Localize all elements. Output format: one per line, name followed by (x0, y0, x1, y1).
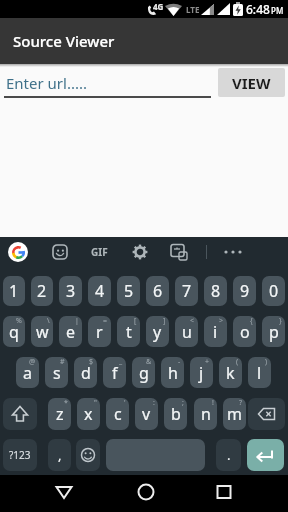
staticText: 9 (240, 280, 250, 302)
button[interactable] (50, 478, 78, 506)
staticText: = (103, 316, 108, 326)
button[interactable]: 2 (31, 276, 53, 306)
button[interactable]: j (190, 357, 213, 388)
button[interactable]: h (161, 357, 184, 388)
staticText: 4G (153, 1, 164, 12)
button[interactable] (131, 243, 149, 261)
staticText: LTE (186, 4, 200, 15)
staticText: : (153, 398, 155, 408)
staticText: s (53, 362, 61, 384)
staticText: 7 (182, 280, 192, 302)
button[interactable] (132, 478, 160, 506)
button[interactable]: 9 (233, 276, 256, 306)
button[interactable] (52, 244, 68, 260)
staticText: _ (119, 357, 123, 367)
button[interactable]: i (204, 316, 227, 347)
staticText: x (84, 403, 93, 425)
staticText: ' (124, 398, 126, 408)
button[interactable]: GIF (88, 243, 110, 261)
button[interactable] (220, 243, 246, 261)
staticText: u (182, 321, 192, 343)
staticText: 3 (66, 280, 76, 302)
button[interactable]: e (59, 316, 82, 347)
button[interactable]: m (223, 398, 246, 430)
staticText: e (66, 321, 76, 343)
button[interactable]: v (135, 398, 158, 430)
button[interactable] (210, 478, 238, 506)
staticText: 1 (9, 280, 19, 302)
button[interactable]: u (175, 316, 198, 347)
button[interactable]: z (48, 398, 71, 430)
staticText: % (16, 316, 22, 326)
staticText: , (58, 446, 62, 464)
button[interactable] (170, 243, 188, 261)
button[interactable] (248, 398, 285, 430)
button[interactable]: r (88, 316, 111, 347)
staticText: & (146, 357, 152, 367)
staticText: v (142, 403, 151, 425)
button[interactable]: c (106, 398, 129, 430)
staticText: [ (134, 316, 137, 326)
button[interactable]: 8 (204, 276, 227, 306)
button[interactable] (247, 439, 284, 471)
staticText: z (56, 403, 64, 425)
button[interactable]: q (3, 316, 25, 347)
button[interactable]: y (146, 316, 169, 347)
staticText: p (269, 321, 279, 343)
staticText: i (213, 321, 218, 343)
button[interactable]: t (117, 316, 140, 347)
staticText: ?123 (9, 448, 31, 462)
staticText: r (96, 321, 103, 343)
staticText: GIF (91, 245, 108, 259)
button[interactable]: w (31, 316, 53, 347)
staticText: 4 (95, 280, 105, 302)
button[interactable]: o (233, 316, 256, 347)
button[interactable]: 0 (262, 276, 285, 306)
button[interactable]: 4 (88, 276, 111, 306)
staticText: Source Viewer (13, 31, 115, 51)
staticText: } (279, 316, 282, 326)
staticText: j (199, 362, 204, 384)
staticText: - (178, 357, 181, 367)
button[interactable]: 7 (175, 276, 198, 306)
staticText: d (81, 362, 91, 384)
button[interactable] (106, 439, 205, 471)
staticText: q (9, 321, 19, 343)
button[interactable] (8, 242, 28, 262)
button[interactable]: k (219, 357, 242, 388)
staticText: VIEW (232, 73, 271, 93)
staticText: y (153, 321, 162, 343)
button[interactable]: 3 (59, 276, 82, 306)
staticText: * (64, 398, 68, 408)
button[interactable]: VIEW (218, 68, 285, 97)
staticText: > (219, 316, 224, 326)
button[interactable]: b (164, 398, 187, 430)
staticText: | (75, 316, 79, 326)
button[interactable]: , (48, 439, 71, 471)
staticText: $ (89, 357, 94, 367)
button[interactable]: p (262, 316, 285, 347)
button[interactable]: 1 (3, 276, 25, 306)
staticText: ( (236, 357, 239, 367)
staticText: # (60, 357, 65, 367)
button[interactable]: d (74, 357, 97, 388)
button[interactable]: ?123 (3, 439, 37, 471)
button[interactable]: a (16, 357, 39, 388)
button[interactable]: . (216, 439, 241, 471)
button[interactable]: g (132, 357, 155, 388)
button[interactable]: s (45, 357, 68, 388)
button[interactable]: x (77, 398, 100, 430)
button[interactable]: f (103, 357, 126, 388)
button[interactable]: l (248, 357, 271, 388)
button[interactable]: 5 (117, 276, 140, 306)
staticText: Enter url..... (6, 73, 88, 93)
staticText: f (112, 362, 118, 384)
button[interactable]: 6 (146, 276, 169, 306)
button[interactable]: n (194, 398, 217, 430)
staticText: n (201, 403, 211, 425)
button[interactable] (3, 398, 37, 430)
staticText: ) (265, 357, 268, 367)
button[interactable] (76, 439, 100, 471)
staticText: @ (29, 357, 36, 367)
